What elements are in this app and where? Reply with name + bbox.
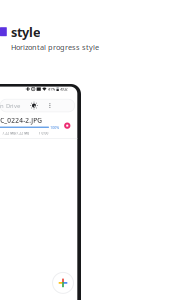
button[interactable]: Cancel upload: [64, 122, 70, 129]
button[interactable]: Create new: [52, 272, 73, 293]
staticText: Search in Drive: [0, 102, 20, 110]
staticText: 41%: [48, 86, 55, 92]
staticText: 4:02: [60, 86, 67, 92]
staticText: DSC_0224-2.JPG: [0, 116, 42, 124]
staticText: Horizontal progress style: [11, 42, 99, 52]
staticText: style: [11, 23, 41, 41]
staticText: 7.22 MB/7.22 MB: [2, 131, 29, 136]
staticText: 100%: [50, 125, 59, 130]
button[interactable]: Search in Drive: [0, 99, 75, 112]
staticText: 1 0:00: [38, 131, 48, 136]
